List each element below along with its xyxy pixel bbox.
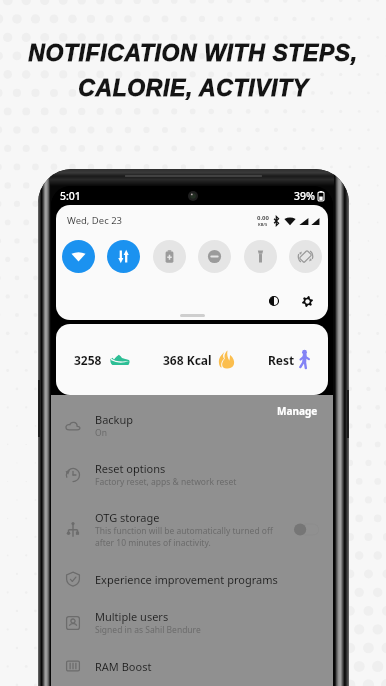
staticText: 5:01 xyxy=(60,189,81,203)
button[interactable]: Backup xyxy=(51,401,333,450)
button[interactable]: Flashlight xyxy=(244,240,277,273)
button[interactable]: Wi-Fi xyxy=(62,240,95,273)
staticText: NOTIFICATION WITH STEPS, xyxy=(28,40,358,66)
staticText: On xyxy=(95,427,107,439)
button[interactable]: Multiple users xyxy=(51,598,333,647)
button[interactable]: Do not disturb xyxy=(198,240,231,273)
staticText: 0.00 xyxy=(257,214,269,222)
staticText: 368 Kcal xyxy=(163,352,212,368)
button[interactable]: Mobile data xyxy=(107,240,140,273)
staticText: Signed in as Sahil Bendure xyxy=(95,624,201,636)
button[interactable]: OTG storage xyxy=(51,499,333,560)
button[interactable]: OTG storage toggle xyxy=(294,523,319,536)
staticText: Wed, Dec 23 xyxy=(67,214,123,227)
button[interactable]: Manage xyxy=(277,404,318,418)
button[interactable]: Reset options xyxy=(51,450,333,499)
button[interactable]: RAM Boost xyxy=(51,647,333,685)
staticText: RAM Boost xyxy=(95,659,152,674)
button[interactable]: Experience improvement programs xyxy=(51,560,333,598)
button[interactable]: Auto rotate xyxy=(289,240,322,273)
staticText: Backup xyxy=(95,412,134,427)
staticText: Experience improvement programs xyxy=(95,572,278,587)
staticText: This function will be automatically turn… xyxy=(95,525,273,549)
staticText: Reset options xyxy=(95,461,166,476)
button[interactable]: Brightness xyxy=(266,293,282,309)
staticText: CALORIE, ACTIVITY xyxy=(78,75,309,101)
button[interactable]: Settings xyxy=(299,293,315,309)
staticText: Multiple users xyxy=(95,609,169,624)
button[interactable]: 3258 xyxy=(56,324,328,395)
staticText: KB/S xyxy=(258,222,268,227)
staticText: 39% xyxy=(294,189,315,203)
staticText: 3258 xyxy=(74,352,102,368)
staticText: Rest xyxy=(268,352,295,368)
button[interactable]: Battery saver xyxy=(153,240,186,273)
staticText: Factory reset, apps & network reset xyxy=(95,476,237,488)
staticText: OTG storage xyxy=(95,510,160,525)
